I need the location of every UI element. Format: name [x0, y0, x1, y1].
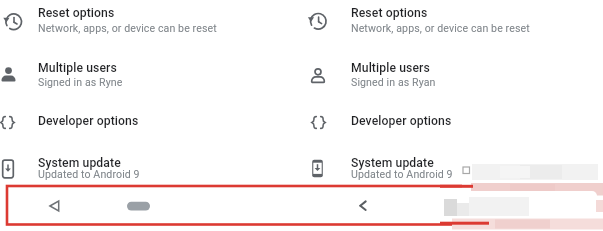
- staticText: Developer options: [351, 114, 452, 128]
- staticText: System update: [351, 156, 434, 170]
- staticText: Signed in as Ryan: [351, 76, 436, 88]
- staticText: Reset options: [38, 6, 115, 20]
- staticText: Multiple users: [351, 61, 430, 75]
- button[interactable]: [302, 49, 603, 103]
- button[interactable]: [0, 103, 301, 142]
- staticText: Updated to Android 9: [351, 168, 453, 180]
- staticText: Developer options: [38, 114, 139, 128]
- staticText: Reset options: [351, 6, 428, 20]
- button[interactable]: [302, 0, 603, 49]
- staticText: Updated to Android 9: [38, 168, 140, 180]
- staticText: System update: [38, 156, 121, 170]
- button[interactable]: [0, 49, 301, 103]
- staticText: Network, apps, or device can be reset: [351, 22, 530, 34]
- staticText: Network, apps, or device can be reset: [38, 22, 217, 34]
- button[interactable]: [0, 142, 301, 184]
- staticText: Signed in as Ryne: [38, 76, 123, 88]
- button[interactable]: [302, 142, 603, 184]
- staticText: Multiple users: [38, 61, 117, 75]
- button[interactable]: [0, 0, 301, 49]
- button[interactable]: [302, 103, 603, 142]
